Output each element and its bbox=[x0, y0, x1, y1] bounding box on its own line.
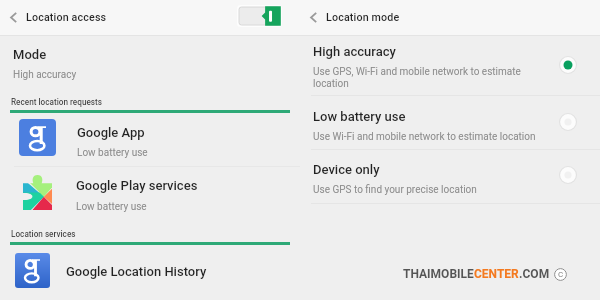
staticText: Mode bbox=[13, 47, 47, 62]
button[interactable]: Selected option bbox=[559, 56, 577, 74]
button[interactable] bbox=[0, 114, 300, 166]
staticText: Google App bbox=[77, 125, 145, 140]
button[interactable] bbox=[0, 38, 300, 84]
button[interactable]: Option bbox=[559, 113, 577, 131]
staticText: Location mode bbox=[326, 11, 400, 24]
staticText: Google Play services bbox=[76, 178, 198, 193]
staticText: Use GPS to find your precise location bbox=[313, 184, 477, 196]
staticText: High accuracy bbox=[313, 44, 396, 59]
staticText: CENTER bbox=[474, 267, 519, 281]
staticText: .COM bbox=[519, 267, 550, 281]
staticText: Use Wi-Fi and mobile network to estimate… bbox=[313, 131, 536, 143]
staticText: Recent location requests bbox=[11, 97, 103, 107]
staticText: Low battery use bbox=[76, 201, 147, 213]
button[interactable]: Back bbox=[0, 0, 26, 34]
staticText: High accuracy bbox=[13, 69, 77, 81]
staticText: Location services bbox=[11, 229, 76, 239]
button[interactable] bbox=[0, 167, 300, 219]
staticText: Google Location History bbox=[66, 264, 207, 279]
button[interactable] bbox=[300, 150, 600, 203]
button[interactable] bbox=[0, 247, 300, 295]
staticText: C bbox=[558, 270, 564, 279]
staticText: Low battery use bbox=[313, 109, 406, 124]
staticText: Device only bbox=[313, 162, 380, 177]
button[interactable]: Location on bbox=[237, 5, 282, 27]
button[interactable]: Back bbox=[300, 0, 326, 34]
staticText: Use GPS, Wi-Fi and mobile network to est… bbox=[313, 66, 547, 90]
staticText: THAIMOBILE bbox=[403, 267, 474, 281]
staticText: Location access bbox=[26, 11, 107, 24]
button[interactable]: Option bbox=[559, 166, 577, 184]
button[interactable] bbox=[300, 40, 600, 95]
button[interactable] bbox=[300, 96, 600, 149]
staticText: Low battery use bbox=[77, 147, 148, 159]
